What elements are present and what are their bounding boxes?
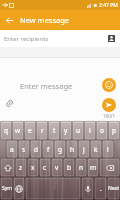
staticText: v: [55, 163, 59, 172]
button[interactable]: [25, 177, 81, 200]
button[interactable]: t: [48, 121, 60, 140]
staticText: Next: [108, 185, 119, 192]
button[interactable]: .: [94, 177, 107, 200]
staticText: g: [58, 145, 62, 154]
button[interactable]: q: [0, 121, 12, 140]
staticText: i: [89, 126, 91, 135]
button[interactable]: Back: [2, 13, 16, 27]
button[interactable]: i: [84, 121, 96, 140]
button[interactable]: v: [51, 158, 63, 177]
button[interactable]: k: [90, 140, 102, 158]
button[interactable]: Sym: [0, 177, 13, 200]
button[interactable]: b: [63, 158, 75, 177]
button[interactable]: y: [60, 121, 72, 140]
staticText: Enter recipients: [4, 35, 49, 43]
staticText: n: [79, 163, 84, 172]
button[interactable]: Voice input: [81, 177, 94, 200]
button[interactable]: d: [30, 140, 42, 158]
button[interactable]: Shift: [0, 158, 15, 177]
button[interactable]: Attach file: [2, 96, 16, 110]
staticText: q: [4, 126, 8, 135]
staticText: d: [34, 145, 38, 154]
button[interactable]: c: [39, 158, 51, 177]
button[interactable]: x: [27, 158, 39, 177]
staticText: w: [15, 126, 21, 135]
staticText: l: [107, 145, 109, 154]
button[interactable]: m: [87, 158, 99, 177]
staticText: 2:47 PM: [99, 2, 118, 9]
staticText: u: [76, 126, 81, 135]
staticText: Sym: [2, 185, 12, 192]
staticText: m: [90, 163, 97, 172]
button[interactable]: w: [12, 121, 24, 140]
button[interactable]: Enter recipients: [4, 30, 118, 47]
button[interactable]: f: [42, 140, 54, 158]
button[interactable]: u: [72, 121, 84, 140]
button[interactable]: Language: [13, 177, 25, 200]
button[interactable]: r: [36, 121, 48, 140]
button[interactable]: s: [18, 140, 30, 158]
button[interactable]: h: [66, 140, 78, 158]
staticText: o: [100, 126, 104, 135]
button[interactable]: j: [78, 140, 90, 158]
staticText: t: [53, 126, 56, 135]
staticText: x: [31, 163, 35, 172]
button[interactable]: g: [54, 140, 66, 158]
staticText: b: [67, 163, 71, 172]
button[interactable]: Emoji: [102, 78, 116, 92]
button[interactable]: e: [24, 121, 36, 140]
button[interactable]: n: [75, 158, 87, 177]
staticText: k: [94, 145, 98, 154]
staticText: p: [112, 126, 116, 135]
staticText: j: [83, 145, 85, 154]
button[interactable]: Next: [107, 177, 120, 200]
staticText: z: [19, 163, 23, 172]
staticText: a: [10, 145, 14, 154]
button[interactable]: Send: [102, 98, 116, 112]
staticText: 160/1: [101, 113, 117, 119]
button[interactable]: p: [108, 121, 120, 140]
button[interactable]: a: [6, 140, 18, 158]
staticText: y: [64, 126, 68, 135]
staticText: h: [70, 145, 75, 154]
staticText: r: [41, 126, 44, 135]
staticText: .: [100, 184, 102, 193]
staticText: c: [43, 163, 47, 172]
button[interactable]: o: [96, 121, 108, 140]
button[interactable]: Contacts: [105, 32, 118, 45]
staticText: Enter message: [20, 81, 73, 91]
staticText: s: [22, 145, 26, 154]
button[interactable]: l: [102, 140, 114, 158]
staticText: New message: [20, 15, 70, 25]
staticText: e: [28, 126, 32, 135]
button[interactable]: z: [15, 158, 27, 177]
staticText: f: [47, 145, 50, 154]
button[interactable]: Delete: [99, 158, 120, 177]
